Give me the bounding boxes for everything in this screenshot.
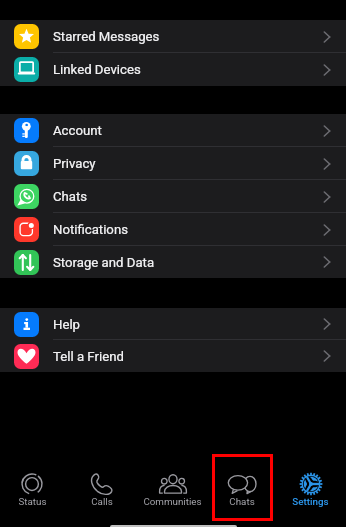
button[interactable]: Storage and Data bbox=[0, 246, 346, 278]
staticText: Settings bbox=[292, 496, 329, 507]
button[interactable]: Privacy bbox=[0, 147, 346, 180]
button[interactable]: Account bbox=[0, 114, 346, 147]
staticText: Status bbox=[18, 496, 47, 507]
staticText: Chats bbox=[229, 496, 255, 507]
button[interactable]: Status bbox=[0, 454, 67, 521]
button[interactable]: Notifications bbox=[0, 213, 346, 246]
staticText: Account bbox=[53, 123, 102, 138]
button[interactable]: Chats bbox=[0, 180, 346, 213]
staticText: Tell a Friend bbox=[53, 349, 124, 364]
staticText: Chats bbox=[53, 189, 88, 204]
button[interactable]: Starred Messages bbox=[0, 20, 346, 53]
button[interactable]: Settings bbox=[277, 454, 343, 521]
staticText: Linked Devices bbox=[53, 62, 141, 77]
button[interactable]: Help bbox=[0, 308, 346, 340]
button[interactable]: Tell a Friend bbox=[0, 340, 346, 372]
staticText: Privacy bbox=[53, 156, 96, 171]
staticText: Help bbox=[53, 317, 81, 332]
button[interactable]: Communities bbox=[137, 454, 207, 521]
button[interactable]: Linked Devices bbox=[0, 53, 346, 86]
staticText: Communities bbox=[143, 496, 202, 507]
staticText: Storage and Data bbox=[53, 255, 155, 270]
staticText: Calls bbox=[91, 496, 113, 507]
staticText: Starred Messages bbox=[53, 29, 160, 44]
staticText: Notifications bbox=[53, 222, 128, 237]
button[interactable]: Calls bbox=[67, 454, 137, 521]
button[interactable]: Chats bbox=[207, 454, 277, 521]
